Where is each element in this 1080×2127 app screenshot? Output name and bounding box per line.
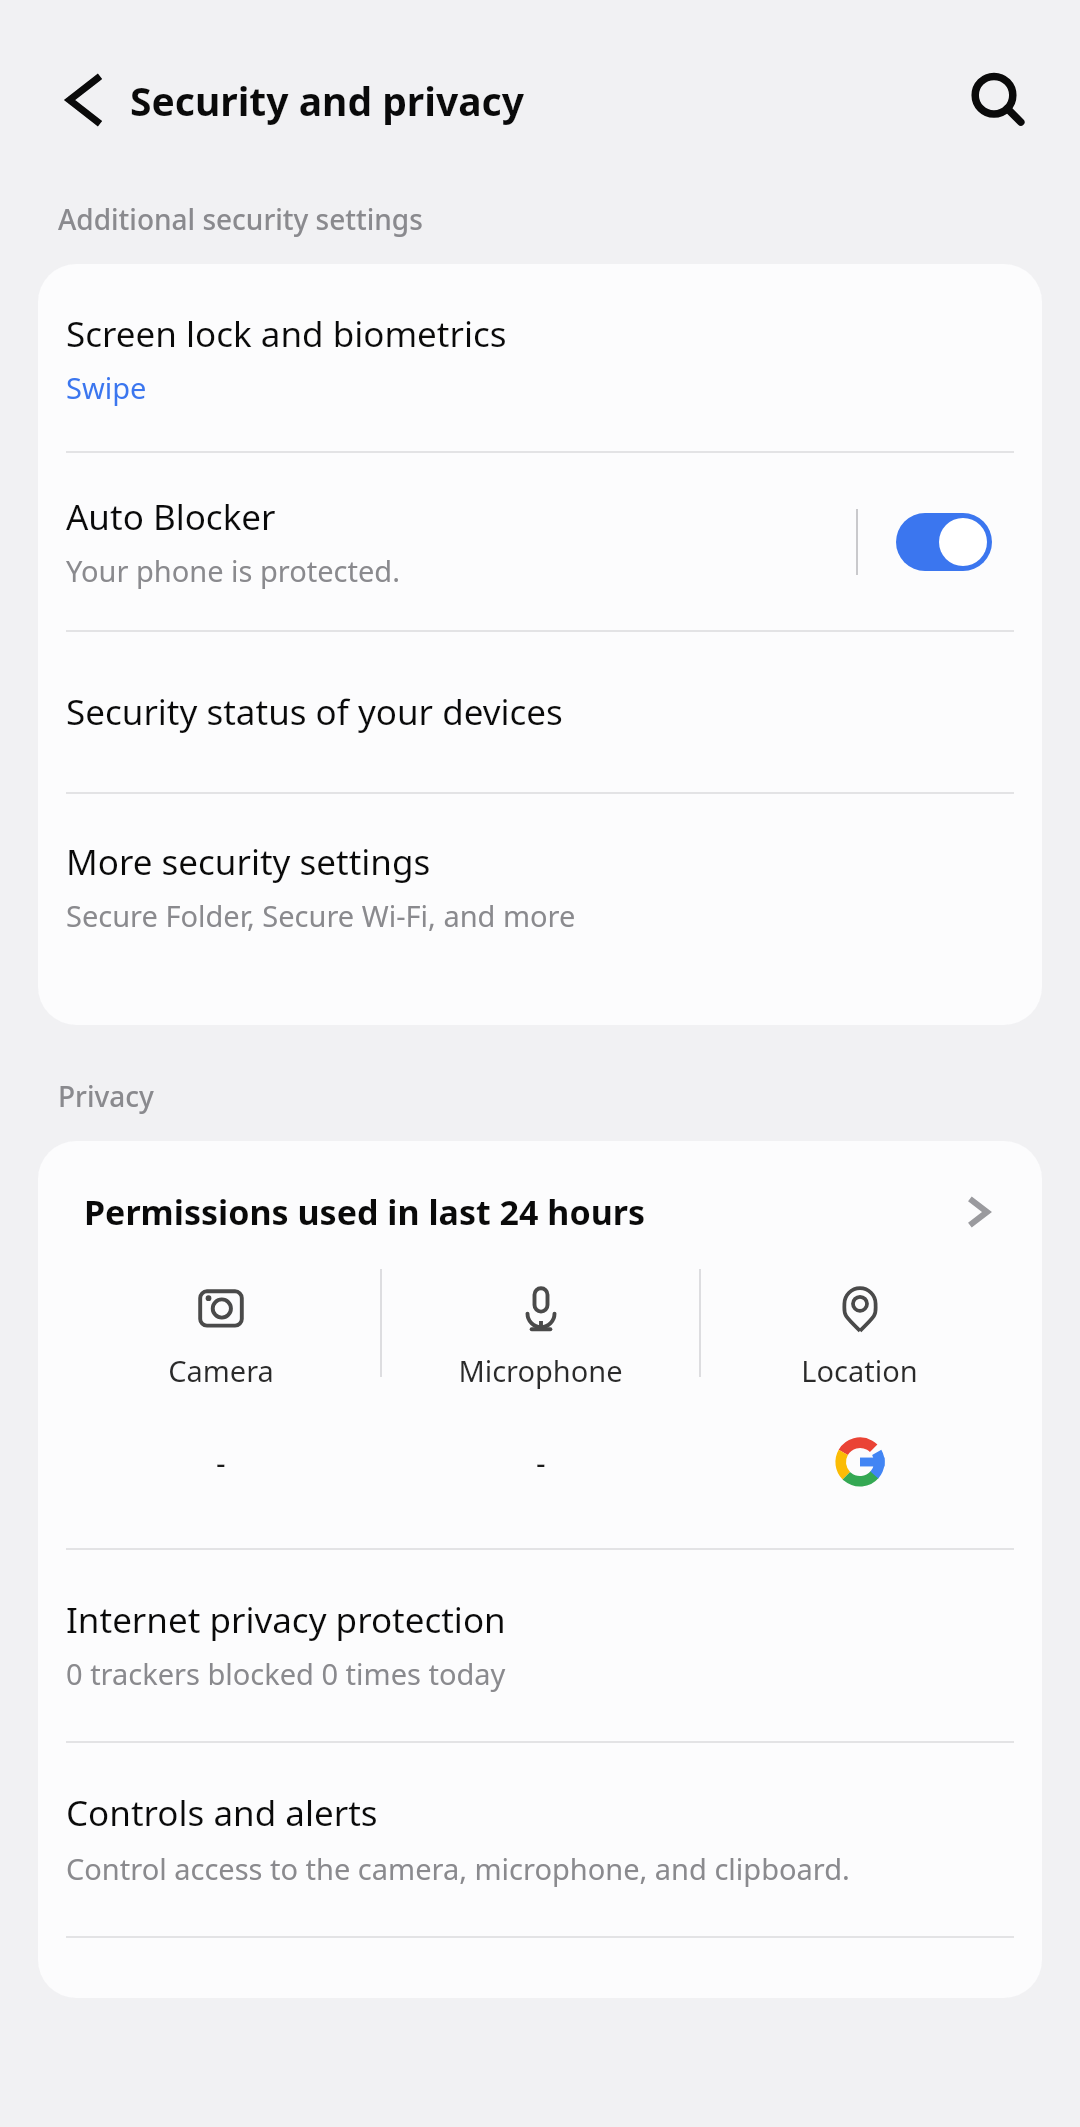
staticText: Swipe	[66, 368, 147, 407]
staticText: Additional security settings	[58, 200, 423, 238]
staticText: Secure Folder, Secure Wi-Fi, and more	[66, 896, 576, 935]
button[interactable]: More security settings	[38, 794, 1042, 981]
button[interactable]: Controls and alerts	[38, 1743, 1042, 1936]
staticText: -	[216, 1442, 226, 1483]
button[interactable]: Auto Blocker	[38, 453, 1042, 630]
button[interactable]: Camera	[62, 1269, 380, 1486]
staticText: Security and privacy	[130, 74, 524, 127]
staticText: Auto Blocker	[66, 493, 276, 541]
staticText: Your phone is protected.	[66, 551, 400, 590]
staticText: Controls and alerts	[66, 1789, 378, 1837]
button[interactable]: Internet privacy protection	[38, 1550, 1042, 1741]
button[interactable]: Back	[44, 64, 116, 136]
button[interactable]: Screen lock and biometrics	[38, 264, 1042, 451]
staticText: Location	[801, 1351, 918, 1390]
staticText: Security status of your devices	[66, 688, 563, 736]
button[interactable]: Location	[701, 1269, 1018, 1486]
staticText: Screen lock and biometrics	[66, 310, 507, 358]
button[interactable]: Security status of your devices	[38, 632, 1042, 792]
staticText: -	[536, 1442, 546, 1483]
button[interactable]: Permissions used in last 24 hours	[38, 1141, 1042, 1269]
button[interactable]: Microphone	[382, 1269, 699, 1486]
staticText: More security settings	[66, 838, 431, 886]
button[interactable]: Search	[958, 60, 1038, 140]
staticText: Privacy	[58, 1077, 154, 1115]
staticText: Microphone	[458, 1351, 623, 1390]
staticText: Control access to the camera, microphone…	[66, 1849, 850, 1888]
staticText: Camera	[168, 1351, 274, 1390]
staticText: Internet privacy protection	[66, 1596, 506, 1644]
staticText: Permissions used in last 24 hours	[84, 1189, 958, 1235]
button[interactable]: Auto Blocker toggle	[896, 513, 992, 571]
staticText: 0 trackers blocked 0 times today	[66, 1654, 506, 1693]
